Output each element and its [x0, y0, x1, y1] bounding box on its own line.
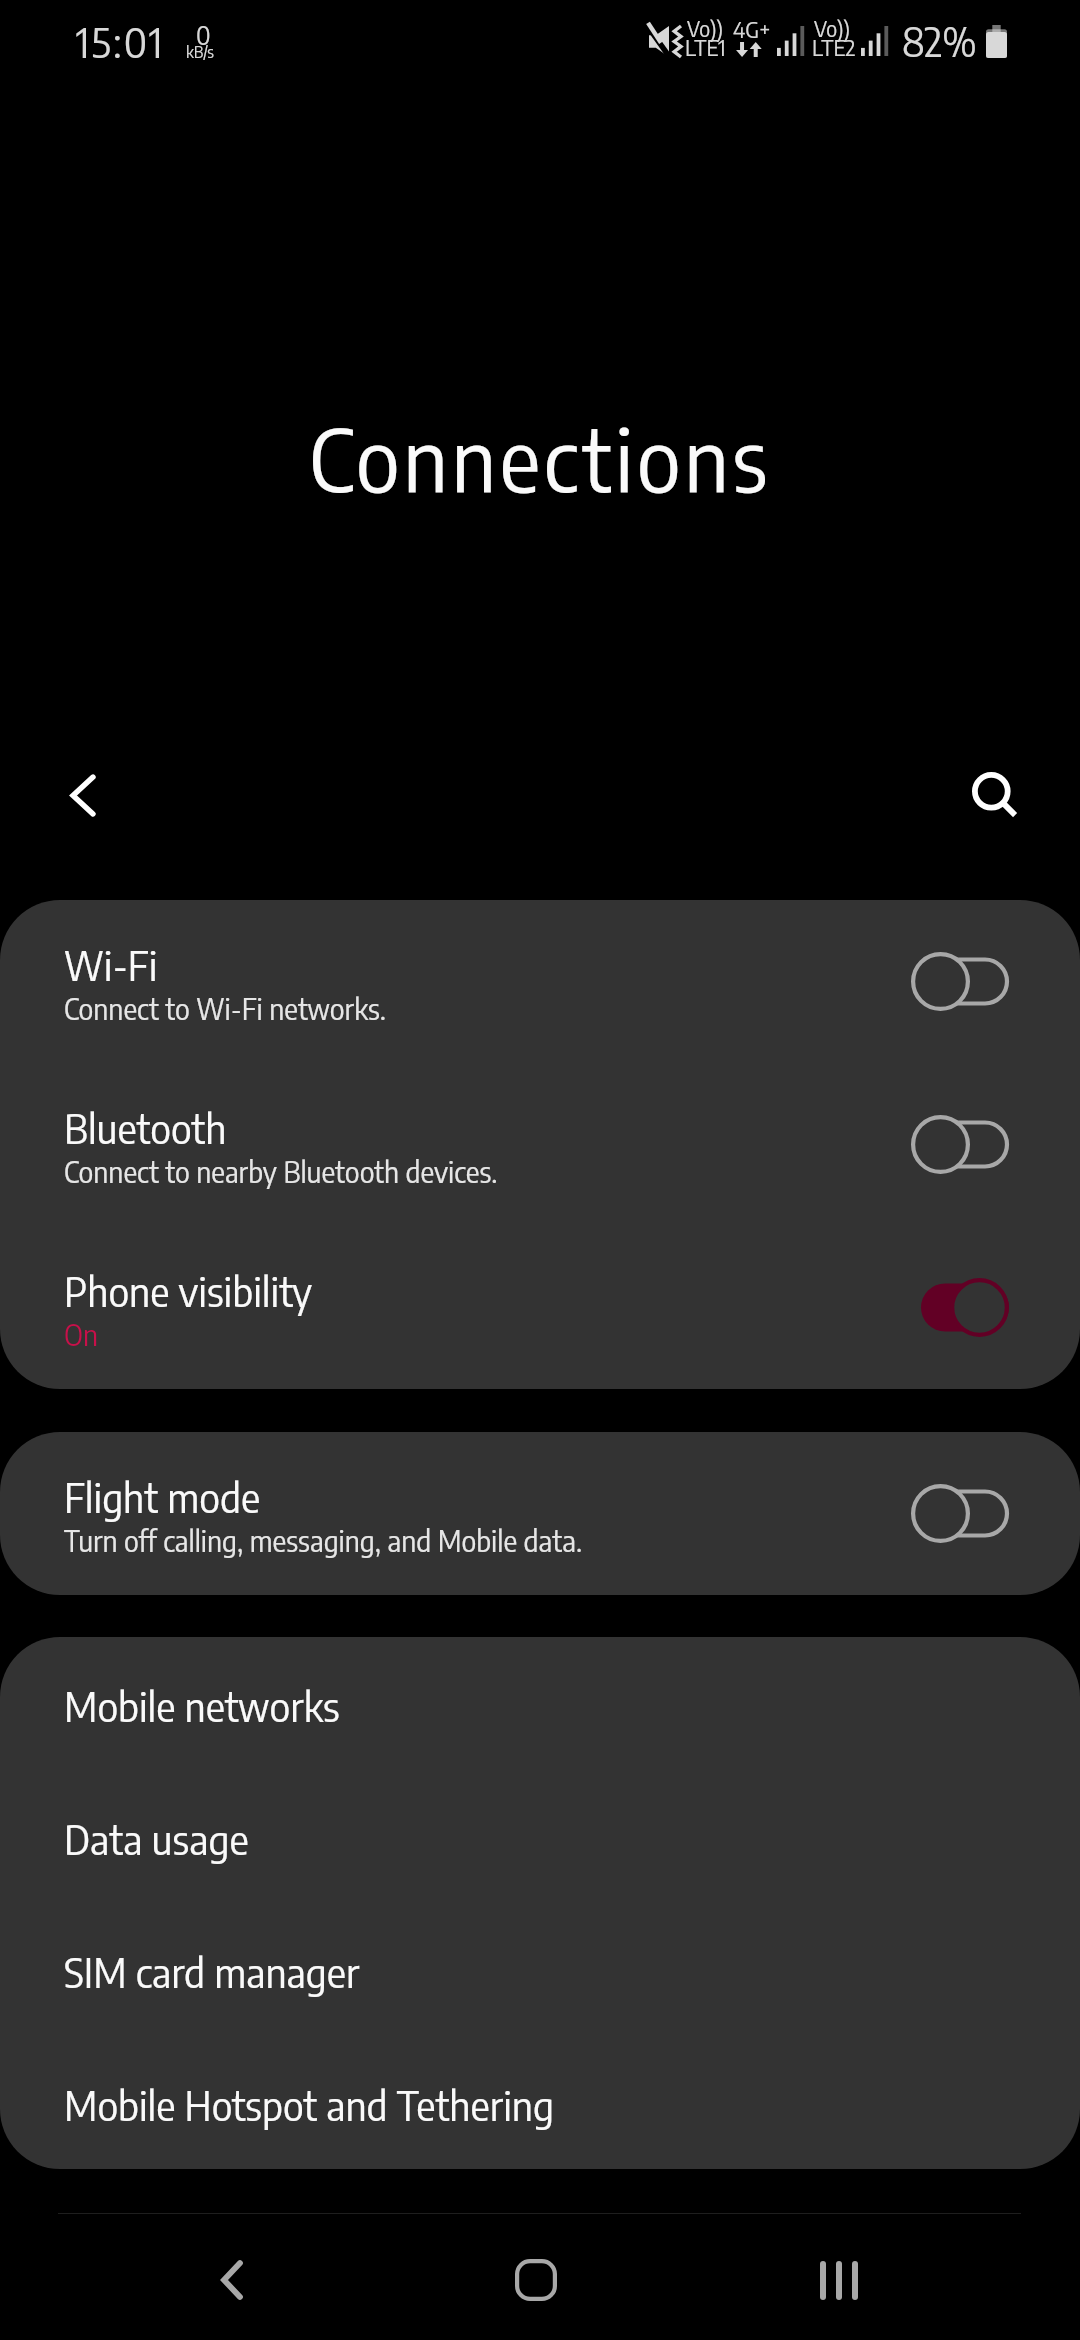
button[interactable]: Flight mode [0, 1432, 1080, 1595]
staticText: Vo)) [814, 15, 851, 41]
staticText: Wi-Fi [64, 940, 158, 990]
button[interactable]: Home [468, 2217, 603, 2340]
button[interactable]: Search [915, 715, 1075, 875]
button[interactable]: Navigate up [3, 715, 163, 875]
button[interactable]: Recent apps [771, 2217, 906, 2340]
staticText: 82% [902, 17, 977, 66]
button[interactable]: Bluetooth [0, 1063, 1080, 1226]
staticText: LTE1 [685, 33, 726, 61]
staticText: Turn off calling, messaging, and Mobile … [64, 1523, 583, 1559]
staticText: Connect to Wi-Fi networks. [64, 991, 386, 1027]
button[interactable]: Mobile Hotspot and Tethering [0, 2036, 1080, 2169]
staticText: Mobile networks [64, 1681, 340, 1731]
staticText: Phone visibility [64, 1266, 312, 1316]
staticText: Bluetooth [64, 1103, 227, 1153]
staticText: Data usage [64, 1814, 249, 1864]
staticText: Flight mode [64, 1472, 261, 1522]
staticText: SIM card manager [64, 1947, 360, 1997]
staticText: 15:01 [76, 17, 165, 67]
button[interactable]: SIM card manager [0, 1903, 1080, 2036]
staticText: On [64, 1317, 99, 1353]
staticText: LTE2 [812, 33, 856, 61]
button[interactable]: Mobile networks [0, 1637, 1080, 1770]
button[interactable]: Back [164, 2217, 299, 2340]
button[interactable]: Phone visibility [0, 1226, 1080, 1389]
button[interactable]: Wi-Fi [0, 900, 1080, 1063]
staticText: 0 [196, 19, 211, 50]
staticText: Connections [0, 404, 1080, 510]
button[interactable]: Data usage [0, 1770, 1080, 1903]
staticText: Connect to nearby Bluetooth devices. [64, 1154, 498, 1190]
staticText: kB/s [186, 42, 215, 62]
staticText: Vo)) [687, 15, 724, 41]
staticText: 4G+ [733, 15, 771, 43]
staticText: Mobile Hotspot and Tethering [64, 2080, 554, 2130]
